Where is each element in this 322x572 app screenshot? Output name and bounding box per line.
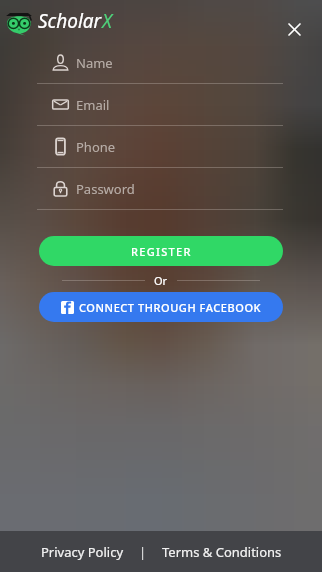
staticText: Privacy Policy xyxy=(41,543,124,561)
staticText: CONNECT THROUGH FACEBOOK xyxy=(79,300,262,315)
staticText: Phone xyxy=(76,138,116,156)
button[interactable]: Password xyxy=(37,168,283,210)
staticText: Scholar xyxy=(38,8,102,34)
staticText: Password xyxy=(76,180,135,198)
staticText: Or xyxy=(154,273,168,287)
button[interactable]: Name xyxy=(37,42,283,84)
button[interactable]: Privacy Policy xyxy=(35,533,130,571)
staticText: Name xyxy=(76,54,113,72)
staticText: X xyxy=(102,8,113,34)
button[interactable]: Phone xyxy=(37,126,283,168)
button[interactable]: Email xyxy=(37,84,283,126)
button[interactable]: CONNECT THROUGH FACEBOOK xyxy=(39,292,283,322)
staticText: Email xyxy=(76,96,110,114)
button[interactable]: Terms & Conditions xyxy=(156,533,288,571)
staticText: Terms & Conditions xyxy=(162,543,282,561)
staticText: | xyxy=(139,543,147,561)
button[interactable]: REGISTER xyxy=(39,236,283,266)
button[interactable]: Close xyxy=(282,17,306,41)
staticText: REGISTER xyxy=(131,244,192,259)
